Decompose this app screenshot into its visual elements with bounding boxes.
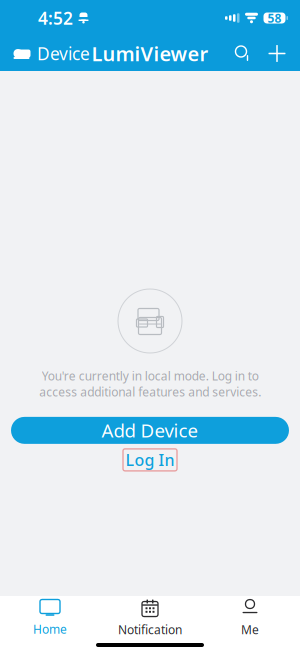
staticText: Add Device	[101, 418, 198, 443]
button[interactable]: Add	[260, 36, 294, 71]
staticText: Me	[241, 621, 259, 637]
staticText: LumiViewer	[91, 40, 208, 67]
button[interactable]: Device	[0, 36, 102, 71]
staticText: Log In	[125, 449, 174, 470]
button[interactable]: Notification	[100, 597, 200, 639]
button[interactable]: Home	[0, 597, 100, 639]
button[interactable]: Me	[200, 597, 300, 639]
button[interactable]: Log In	[123, 449, 177, 471]
staticText: Notification	[118, 621, 182, 637]
button[interactable]: Search	[226, 36, 260, 71]
button[interactable]: Add Device	[11, 417, 289, 444]
staticText: You're currently in local mode. Log in t…	[39, 368, 261, 400]
staticText: Home	[33, 621, 67, 637]
staticText: 4:52	[38, 6, 73, 29]
staticText: 58	[267, 10, 281, 26]
staticText: Device	[37, 42, 90, 65]
